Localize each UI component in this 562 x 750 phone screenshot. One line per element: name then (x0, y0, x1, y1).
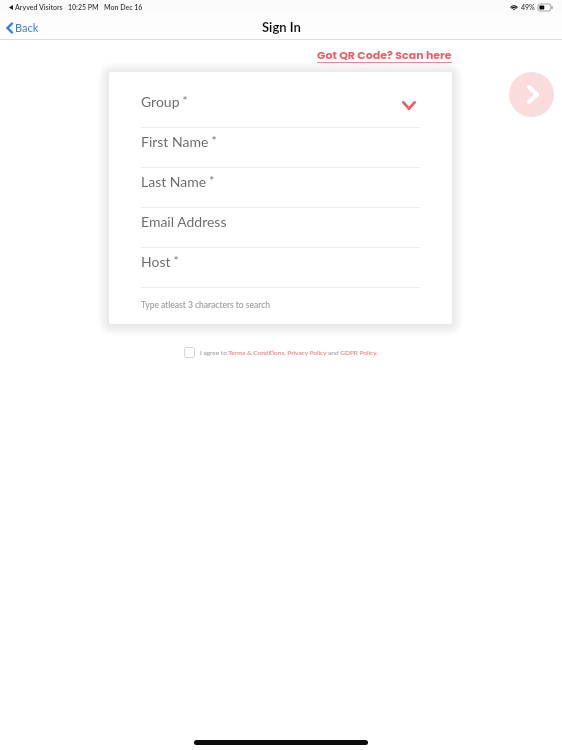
staticText: Host * (141, 253, 179, 270)
staticText: Back (15, 21, 39, 34)
button[interactable]: Last Name * (141, 168, 420, 208)
staticText: Last Name * (141, 173, 215, 190)
staticText: Type atleast 3 characters to search (141, 300, 270, 310)
staticText: 49% (521, 3, 535, 11)
button[interactable]: Group * (141, 88, 420, 128)
staticText: Group * (141, 93, 188, 110)
button[interactable]: Next (509, 72, 554, 117)
button[interactable]: I agree to Terms & Conditions, Privacy P… (200, 349, 378, 357)
button[interactable]: Host * (141, 248, 420, 288)
button[interactable]: First Name * (141, 128, 420, 168)
staticText: Mon Dec 16 (104, 3, 143, 11)
staticText: Aryved Visitors (15, 3, 63, 11)
button[interactable]: Back (0, 17, 49, 38)
staticText: Sign In (262, 19, 301, 35)
staticText: 10:25 PM (68, 3, 99, 11)
staticText: Email Address (141, 213, 227, 230)
staticText: I agree to Terms & Conditions, Privacy P… (200, 349, 378, 357)
staticText: Got QR Code? Scan here (317, 47, 452, 62)
button[interactable]: Email Address (141, 208, 420, 248)
staticText: First Name * (141, 133, 217, 150)
button[interactable]: Got QR Code? Scan here (313, 44, 456, 65)
button[interactable]: I agree to terms checkbox (184, 347, 195, 358)
